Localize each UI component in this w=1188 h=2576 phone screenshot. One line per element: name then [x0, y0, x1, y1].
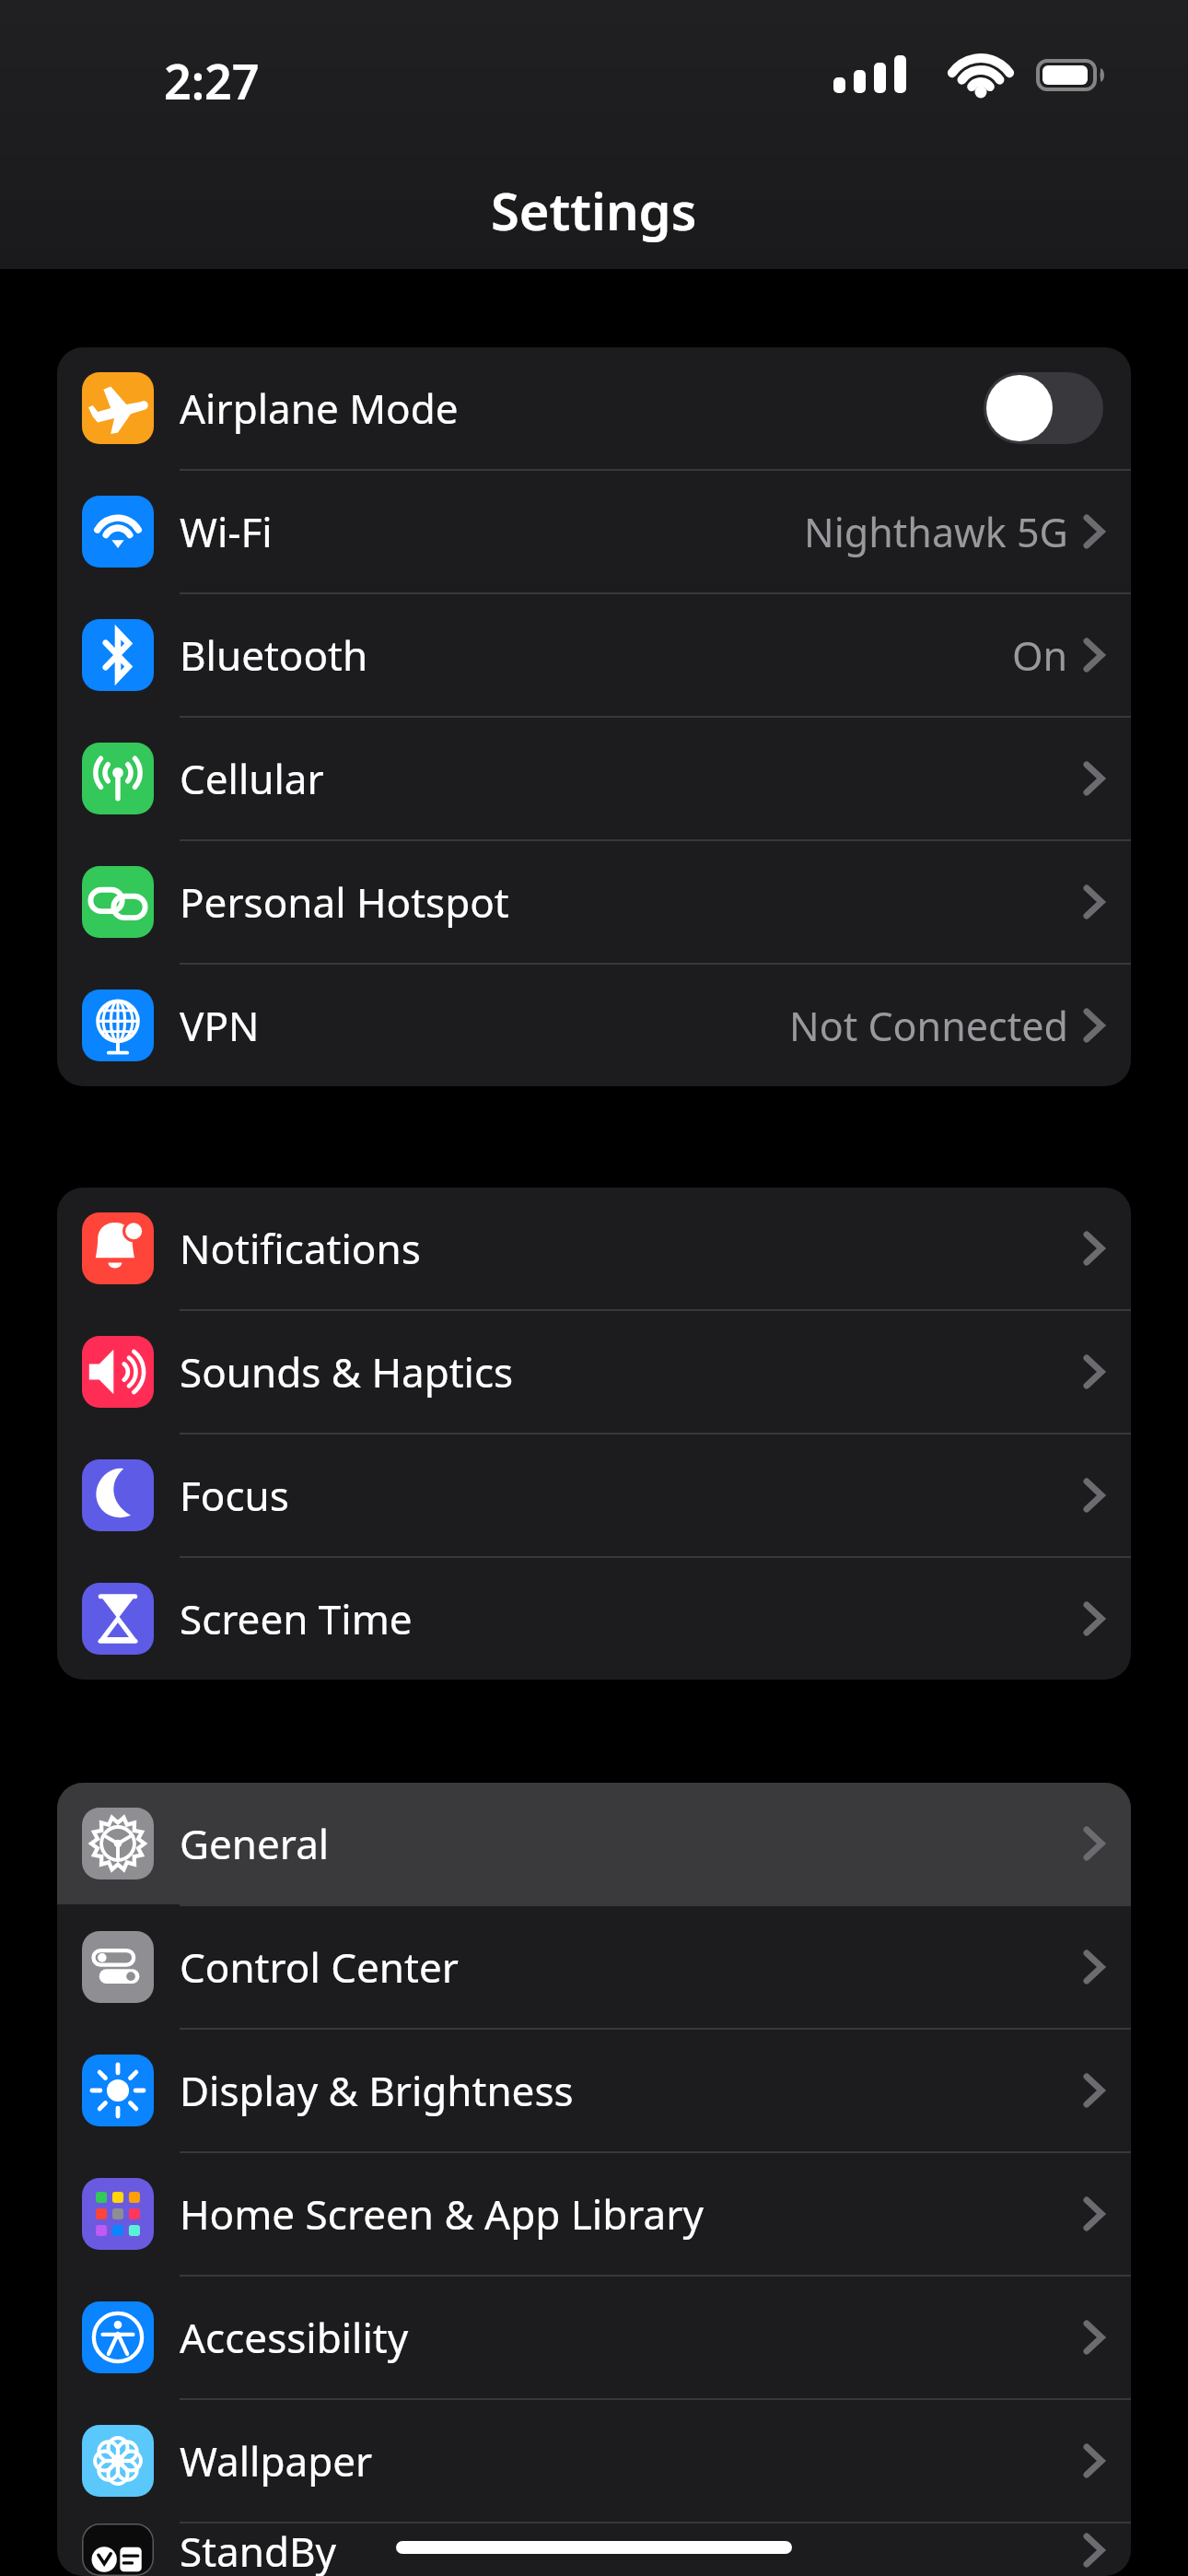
- staticText: Notifications: [180, 1221, 421, 1276]
- staticText: Screen Time: [180, 1591, 413, 1646]
- staticText: Home Screen & App Library: [180, 2186, 704, 2242]
- button[interactable]: Bluetooth: [57, 594, 1131, 716]
- staticText: Display & Brightness: [180, 2063, 574, 2118]
- staticText: Focus: [180, 1468, 289, 1523]
- button[interactable]: Focus: [57, 1434, 1131, 1556]
- staticText: Control Center: [180, 1939, 459, 1995]
- button[interactable]: Airplane Mode: [57, 347, 1131, 469]
- button[interactable]: Personal Hotspot: [57, 841, 1131, 963]
- staticText: Cellular: [180, 751, 324, 806]
- button[interactable]: Accessibility: [57, 2277, 1131, 2398]
- staticText: 2:27: [164, 48, 260, 113]
- button[interactable]: Display & Brightness: [57, 2030, 1131, 2151]
- button[interactable]: Wallpaper: [57, 2400, 1131, 2522]
- staticText: Settings: [491, 175, 697, 245]
- button[interactable]: Screen Time: [57, 1558, 1131, 1680]
- staticText: StandBy: [180, 2523, 337, 2576]
- staticText: Accessibility: [180, 2310, 409, 2365]
- staticText: Not Connected: [789, 999, 1068, 1053]
- staticText: VPN: [180, 998, 260, 1053]
- staticText: General: [180, 1816, 330, 1871]
- button[interactable]: VPN: [57, 965, 1131, 1086]
- staticText: Airplane Mode: [180, 381, 459, 436]
- staticText: Sounds & Haptics: [180, 1344, 514, 1399]
- staticText: Wallpaper: [180, 2433, 373, 2488]
- button[interactable]: Notifications: [57, 1188, 1131, 1309]
- button[interactable]: Sounds & Haptics: [57, 1311, 1131, 1433]
- staticText: Bluetooth: [180, 627, 368, 683]
- staticText: Personal Hotspot: [180, 874, 509, 930]
- button[interactable]: Cellular: [57, 718, 1131, 839]
- staticText: Wi-Fi: [180, 504, 273, 559]
- button[interactable]: General: [57, 1783, 1131, 1904]
- staticText: Nighthawk 5G: [804, 505, 1068, 559]
- button[interactable]: Airplane Mode toggle: [984, 372, 1103, 444]
- button[interactable]: Wi-Fi: [57, 471, 1131, 592]
- button[interactable]: Control Center: [57, 1906, 1131, 2028]
- button[interactable]: StandBy: [57, 2523, 1131, 2576]
- button[interactable]: Home Screen & App Library: [57, 2153, 1131, 2275]
- staticText: On: [1012, 628, 1068, 683]
